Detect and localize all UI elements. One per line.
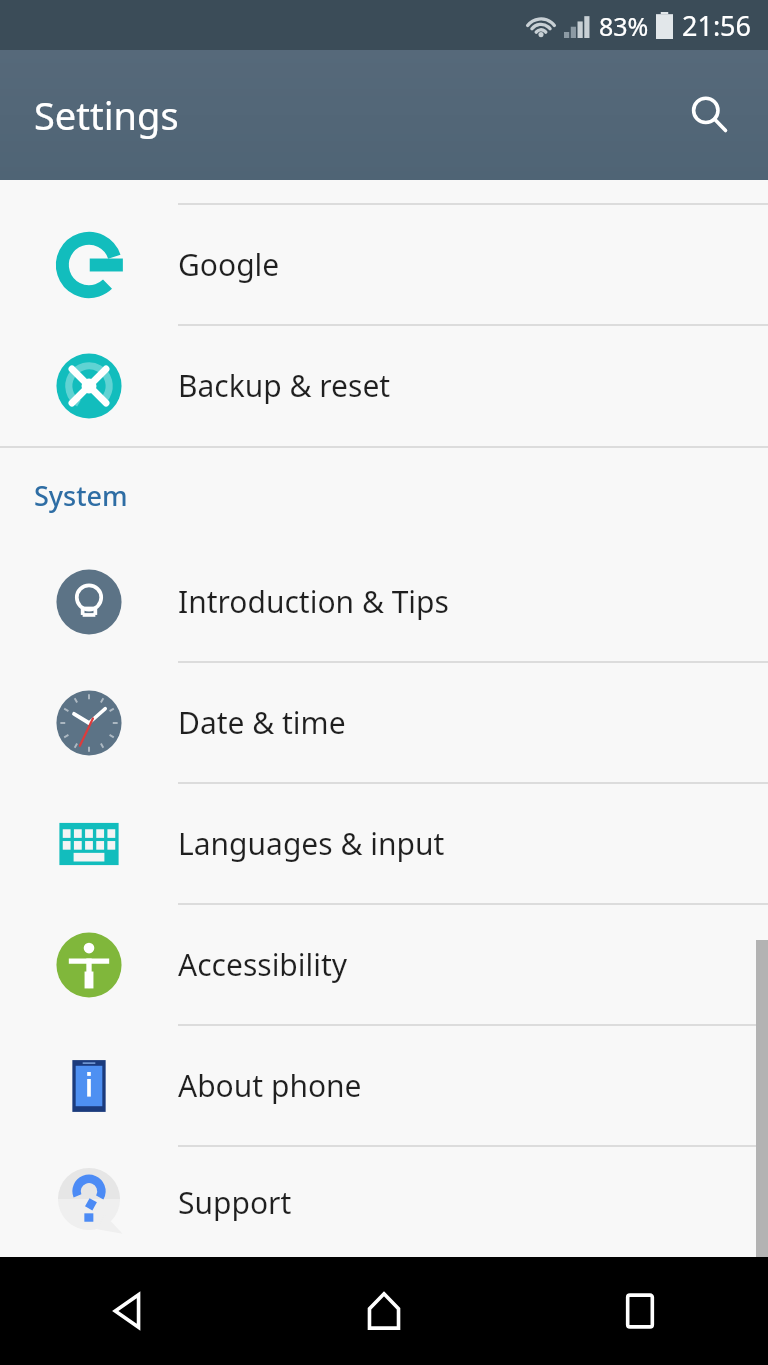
button[interactable]: Languages & input: [0, 784, 768, 903]
button[interactable]: Date & time: [0, 663, 768, 782]
button[interactable]: Support: [0, 1147, 768, 1257]
staticText: About phone: [178, 1065, 362, 1106]
staticText: Date & time: [178, 702, 346, 743]
button[interactable]: Introduction & Tips: [0, 542, 768, 661]
staticText: System: [34, 477, 128, 514]
button[interactable]: Search: [674, 79, 746, 151]
button[interactable]: Home: [256, 1257, 512, 1365]
button[interactable]: About phone: [0, 1026, 768, 1145]
button[interactable]: Accessibility: [0, 905, 768, 1024]
staticText: Settings: [34, 89, 179, 141]
staticText: Languages & input: [178, 823, 445, 864]
staticText: Accessibility: [178, 944, 348, 985]
staticText: Support: [178, 1182, 292, 1223]
button[interactable]: Google: [0, 205, 768, 324]
staticText: Introduction & Tips: [178, 581, 449, 622]
staticText: Google: [178, 244, 280, 285]
button[interactable]: Recent apps: [512, 1257, 768, 1365]
staticText: 21:56: [682, 7, 752, 44]
button[interactable]: Backup & reset: [0, 326, 768, 445]
staticText: Backup & reset: [178, 365, 391, 406]
button[interactable]: Back: [0, 1257, 256, 1365]
staticText: 83%: [599, 9, 649, 43]
